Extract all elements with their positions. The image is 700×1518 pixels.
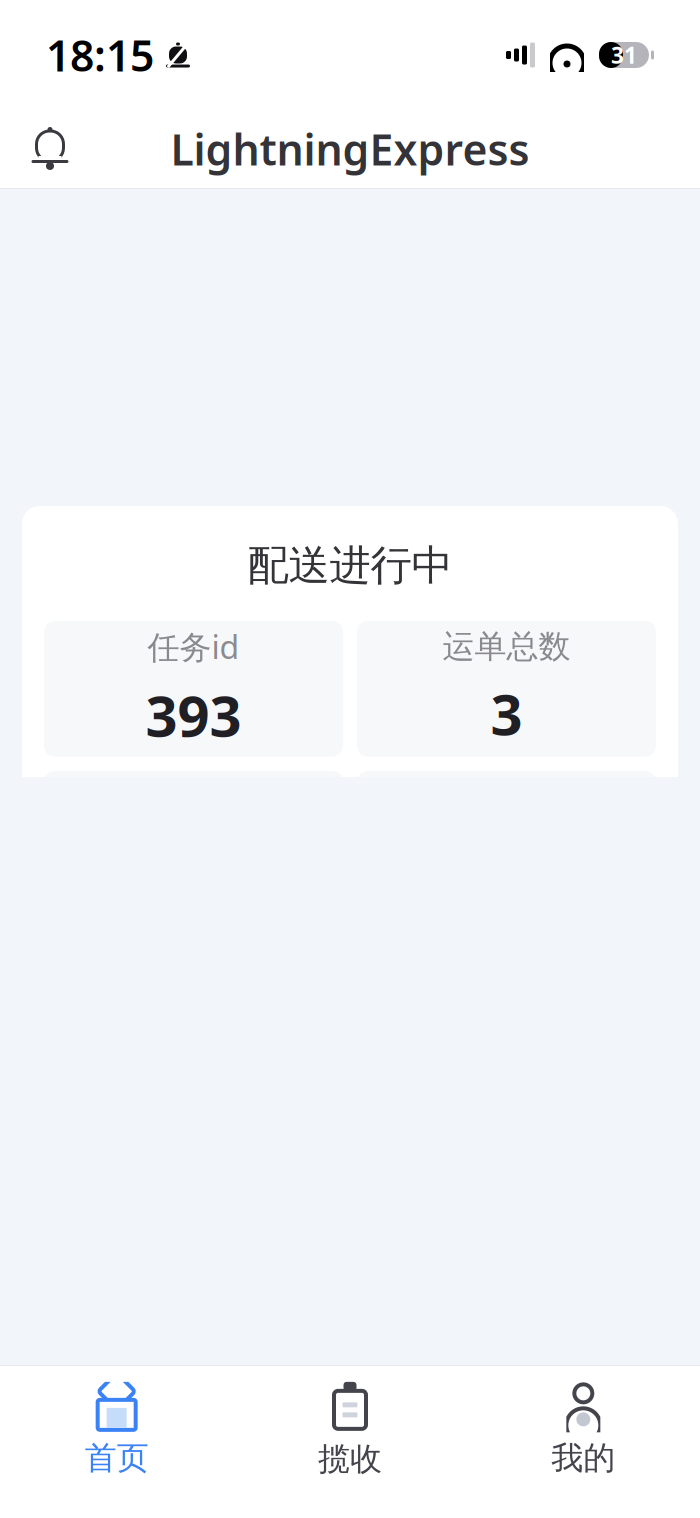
staticText: 我的 (551, 1438, 615, 1478)
staticText: 首页 (85, 1438, 149, 1478)
staticText: 配送进行中 (247, 540, 452, 591)
staticText: LightningExpress (170, 121, 529, 177)
button[interactable]: 揽收 (233, 1380, 467, 1480)
button[interactable]: 我的 (467, 1380, 700, 1480)
staticText: 运单总数 (442, 627, 570, 666)
staticText: 揽收 (318, 1439, 382, 1479)
staticText: 3 (490, 676, 522, 751)
staticText: 任务id (147, 625, 239, 668)
button[interactable]: Notifications (18, 117, 82, 181)
staticText: 18:15 (46, 27, 154, 83)
staticText: 393 (145, 678, 241, 752)
staticText: 31 (611, 40, 637, 70)
button[interactable]: 首页 (0, 1380, 233, 1480)
